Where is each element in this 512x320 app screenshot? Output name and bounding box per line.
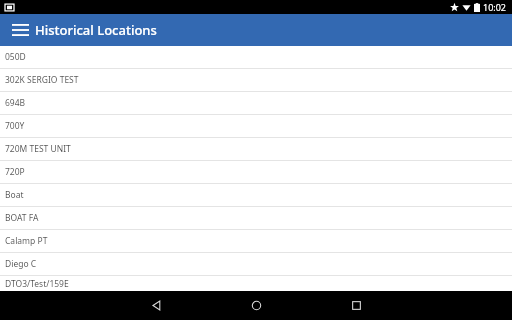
button[interactable]: 720M TEST UNIT bbox=[0, 138, 512, 161]
button[interactable]: Diego C bbox=[0, 253, 512, 276]
button[interactable]: Back bbox=[106, 291, 206, 320]
button[interactable]: Boat bbox=[0, 184, 512, 207]
button[interactable]: Open navigation drawer bbox=[8, 18, 32, 42]
staticText: Calamp PT bbox=[5, 235, 48, 247]
button[interactable]: 694B bbox=[0, 92, 512, 115]
staticText: 700Y bbox=[5, 120, 25, 132]
button[interactable]: Calamp PT bbox=[0, 230, 512, 253]
button[interactable]: Recent apps bbox=[306, 291, 406, 320]
staticText: DTO3/Test/159E bbox=[5, 278, 69, 290]
button[interactable]: DTO3/Test/159E bbox=[0, 276, 512, 291]
button[interactable]: 720P bbox=[0, 161, 512, 184]
button[interactable]: BOAT FA bbox=[0, 207, 512, 230]
staticText: 10:02 bbox=[483, 1, 507, 13]
staticText: Diego C bbox=[5, 258, 37, 270]
button[interactable]: Home bbox=[206, 291, 306, 320]
staticText: Boat bbox=[5, 189, 24, 201]
staticText: 050D bbox=[5, 51, 26, 63]
button[interactable]: 050D bbox=[0, 46, 512, 69]
staticText: 302K SERGIO TEST bbox=[5, 74, 79, 86]
staticText: 720P bbox=[5, 166, 25, 178]
staticText: 720M TEST UNIT bbox=[5, 143, 71, 155]
button[interactable]: 700Y bbox=[0, 115, 512, 138]
staticText: BOAT FA bbox=[5, 212, 39, 224]
button[interactable]: 302K SERGIO TEST bbox=[0, 69, 512, 92]
staticText: Historical Locations bbox=[35, 21, 157, 39]
staticText: 694B bbox=[5, 97, 26, 109]
